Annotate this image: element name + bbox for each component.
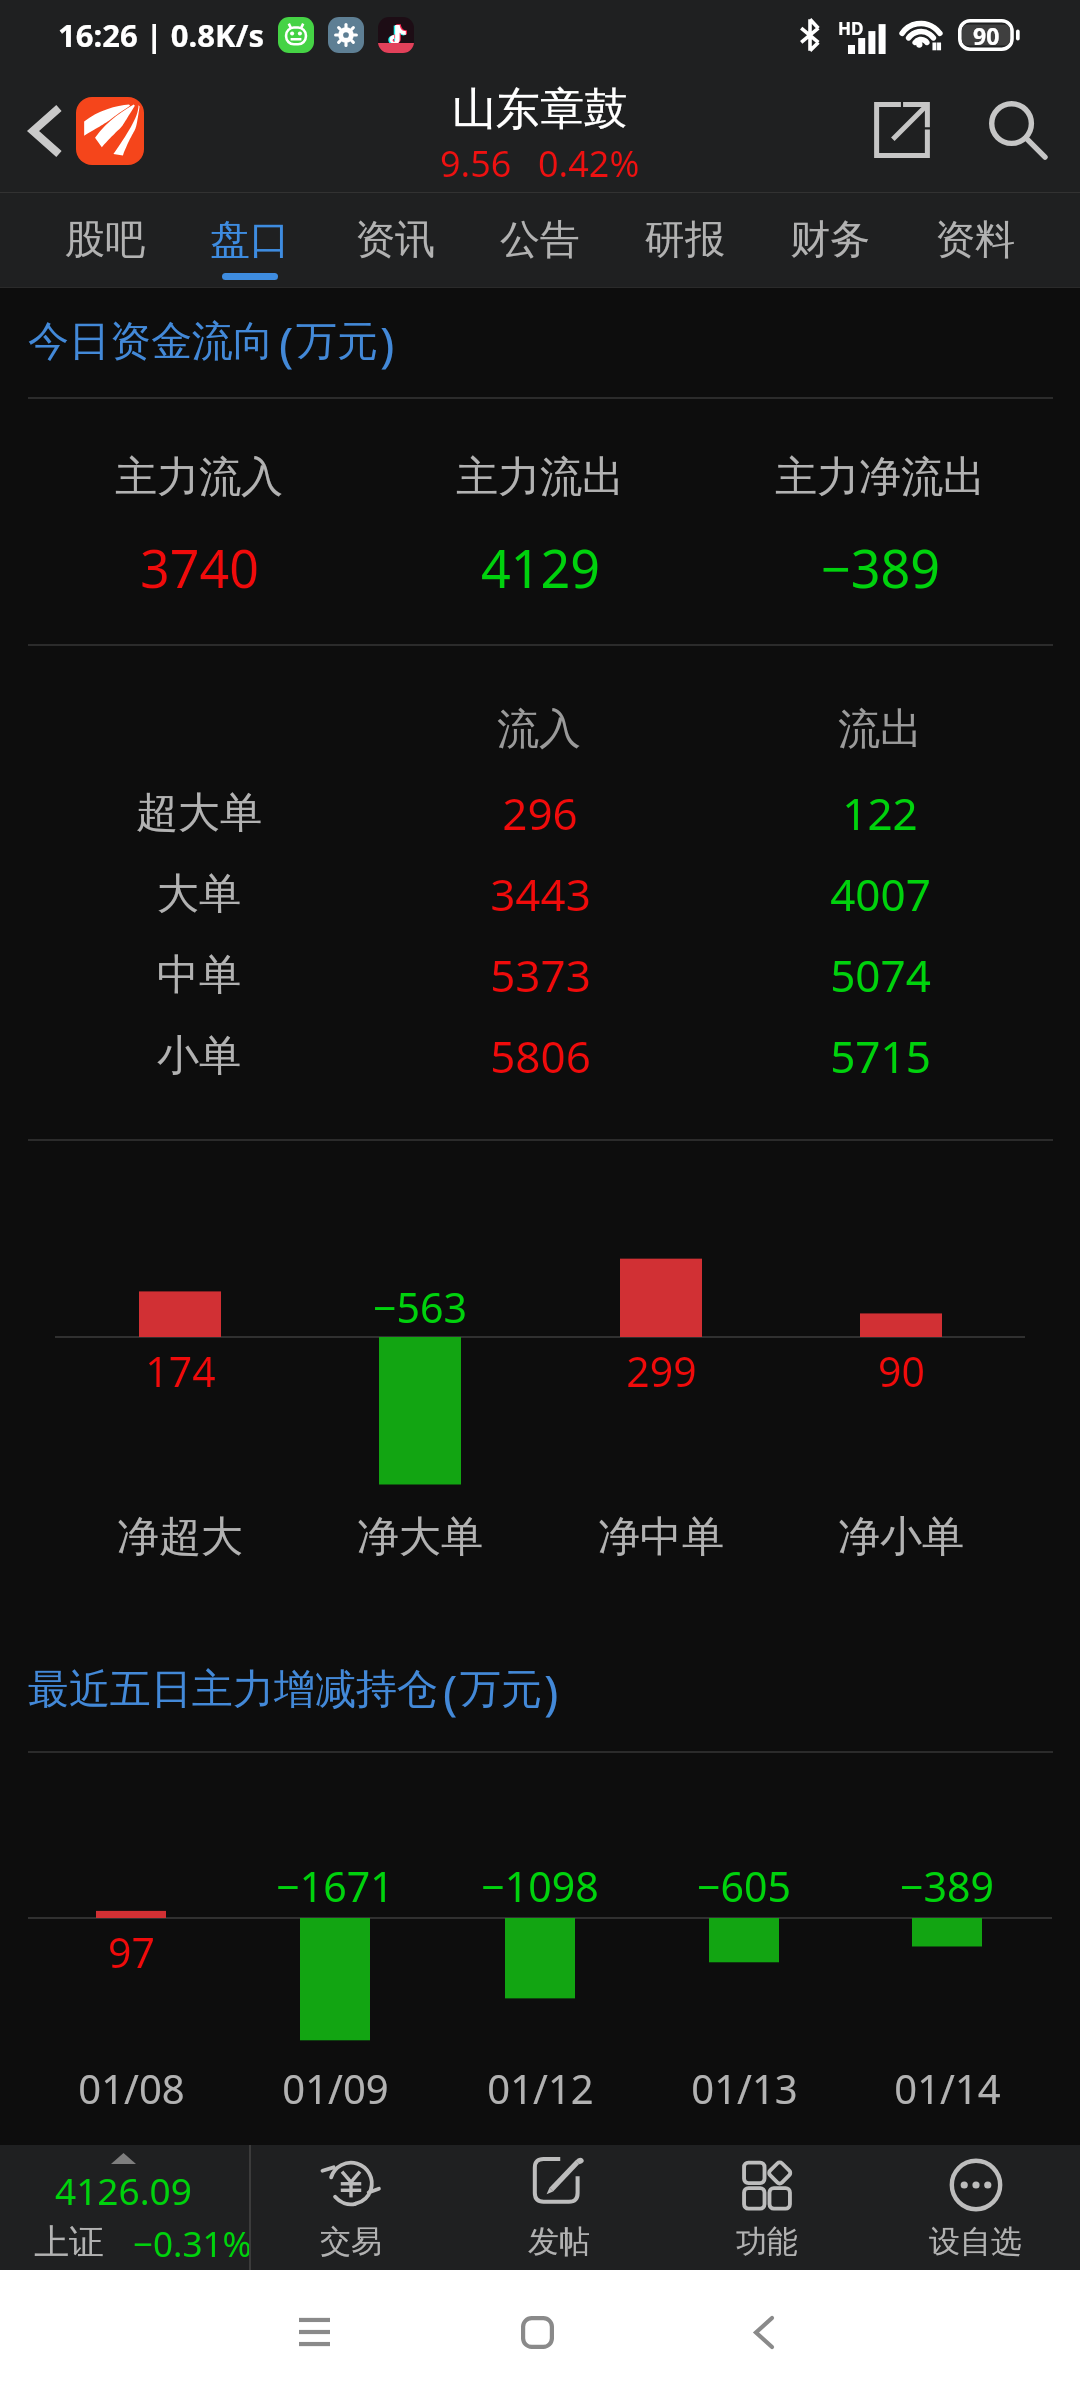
button[interactable]: 功能: [663, 2145, 871, 2270]
button[interactable]: 财务: [758, 193, 902, 287]
staticText: 功能: [736, 2222, 798, 2261]
staticText: 01/14: [894, 2061, 1001, 2115]
staticText: 超大单: [136, 787, 262, 840]
staticText: 山东章鼓: [452, 82, 628, 137]
staticText: −389: [821, 532, 940, 603]
staticText: 研报: [645, 214, 725, 264]
staticText: 0.42%: [538, 139, 640, 188]
staticText: 97: [108, 1924, 155, 1980]
staticText: 资料: [935, 214, 1015, 264]
staticText: 交易: [320, 2222, 382, 2261]
staticText: 万元: [296, 316, 378, 368]
staticText: 发帖: [528, 2222, 590, 2261]
staticText: 90: [878, 1343, 925, 1399]
staticText: 4126.09: [55, 2165, 192, 2211]
staticText: 中单: [157, 949, 241, 1002]
staticText: 净超大: [117, 1511, 243, 1564]
staticText: 174: [145, 1343, 216, 1399]
button[interactable]: 资讯: [323, 193, 467, 287]
button[interactable]: App home: [76, 97, 144, 165]
staticText: 9.56: [440, 139, 512, 188]
staticText: 小单: [157, 1030, 241, 1083]
staticText: −605: [697, 1858, 791, 1914]
staticText: 122: [842, 783, 918, 843]
staticText: 主力净流出: [775, 451, 985, 504]
staticText: 5373: [490, 945, 591, 1005]
button[interactable]: 设自选: [871, 2145, 1079, 2270]
button[interactable]: 研报: [613, 193, 757, 287]
staticText: 最近五日主力增减持仓: [28, 1664, 438, 1716]
staticText: 4129: [481, 532, 600, 603]
button[interactable]: 发帖: [455, 2145, 663, 2270]
staticText: 5806: [490, 1026, 591, 1086]
button[interactable]: Recents: [264, 2282, 364, 2382]
staticText: 主力流入: [115, 451, 283, 504]
staticText: ): [544, 1659, 559, 1724]
staticText: 财务: [790, 214, 870, 264]
staticText: 01/08: [78, 2061, 185, 2115]
staticText: 上证: [34, 2220, 104, 2264]
staticText: 90: [973, 20, 1000, 51]
staticText: 4007: [830, 864, 931, 924]
staticText: −1098: [481, 1858, 599, 1914]
button[interactable]: 公告: [468, 193, 612, 287]
button[interactable]: Share: [855, 83, 949, 177]
staticText: 296: [502, 783, 578, 843]
staticText: 公告: [500, 214, 580, 264]
staticText: 流入: [497, 703, 581, 756]
staticText: 资讯: [355, 214, 435, 264]
staticText: 01/13: [691, 2061, 798, 2115]
staticText: −1671: [276, 1858, 394, 1914]
button[interactable]: 股吧: [33, 193, 177, 287]
staticText: 5715: [830, 1026, 931, 1086]
staticText: 盘口: [210, 214, 290, 264]
button[interactable]: 盘口: [178, 193, 322, 287]
staticText: 净小单: [838, 1511, 964, 1564]
button[interactable]: Back: [10, 95, 82, 167]
staticText: 01/12: [487, 2061, 594, 2115]
staticText: 万元: [460, 1664, 542, 1716]
staticText: 净中单: [598, 1511, 724, 1564]
staticText: HD: [838, 17, 864, 40]
staticText: ): [380, 311, 395, 376]
staticText: 01/09: [282, 2061, 389, 2115]
staticText: 3740: [140, 532, 259, 603]
staticText: −563: [373, 1279, 467, 1335]
staticText: 今日资金流向: [28, 316, 274, 368]
staticText: −389: [900, 1858, 994, 1914]
staticText: 主力流出: [456, 451, 624, 504]
staticText: (: [443, 1659, 458, 1724]
button[interactable]: Home: [487, 2282, 587, 2382]
staticText: 3443: [490, 864, 591, 924]
staticText: 5074: [830, 945, 931, 1005]
button[interactable]: Back: [714, 2282, 814, 2382]
staticText: 299: [626, 1343, 697, 1399]
staticText: −0.31%: [133, 2220, 252, 2264]
staticText: 净大单: [357, 1511, 483, 1564]
staticText: 大单: [157, 868, 241, 921]
button[interactable]: Search: [972, 84, 1066, 178]
staticText: 设自选: [929, 2222, 1022, 2261]
staticText: 股吧: [65, 214, 145, 264]
staticText: 16:26 | 0.8K/s: [58, 14, 265, 56]
button[interactable]: 4126.09: [0, 2145, 249, 2270]
button[interactable]: 资料: [903, 193, 1047, 287]
staticText: 流出: [838, 703, 922, 756]
staticText: (: [279, 311, 294, 376]
button[interactable]: 交易: [247, 2145, 455, 2270]
